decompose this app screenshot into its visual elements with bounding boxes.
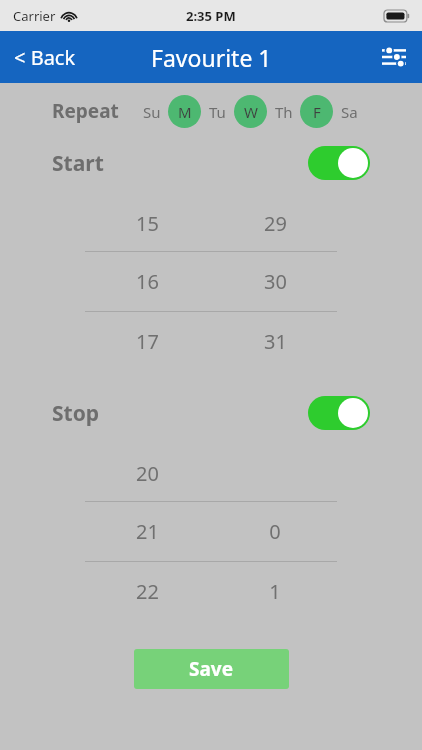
staticText: Sa xyxy=(341,102,358,122)
staticText: 2:35 PM xyxy=(186,7,236,25)
button[interactable]: Toggle xyxy=(308,396,370,430)
button[interactable]: 15 xyxy=(0,195,422,251)
staticText: Carrier xyxy=(13,7,56,25)
button[interactable]: 20 xyxy=(0,445,422,501)
button[interactable]: 16 xyxy=(0,251,422,311)
staticText: Th xyxy=(275,102,293,122)
button[interactable]: 17 xyxy=(0,311,422,371)
staticText: 29 xyxy=(264,210,287,237)
staticText: W xyxy=(244,102,258,122)
button[interactable]: Su xyxy=(135,95,168,128)
staticText: 20 xyxy=(136,460,159,487)
staticText: 15 xyxy=(136,210,159,237)
button[interactable]: < Back xyxy=(0,36,90,79)
staticText: F xyxy=(313,102,321,122)
staticText: Start xyxy=(52,149,104,178)
button[interactable]: Tu xyxy=(201,95,234,128)
button[interactable]: Toggle xyxy=(308,146,370,180)
button[interactable]: 21 xyxy=(0,501,422,561)
staticText: 0 xyxy=(269,518,281,545)
staticText: 30 xyxy=(264,268,287,295)
staticText: Save xyxy=(189,656,234,682)
staticText: Repeat xyxy=(52,98,119,124)
staticText: 31 xyxy=(264,328,287,355)
staticText: Tu xyxy=(209,102,226,122)
staticText: 16 xyxy=(136,268,159,295)
button[interactable]: Th xyxy=(267,95,300,128)
button[interactable]: M xyxy=(168,95,201,128)
button[interactable]: W xyxy=(234,95,267,128)
staticText: < Back xyxy=(14,44,76,71)
button[interactable]: Sa xyxy=(333,95,366,128)
button[interactable]: Save xyxy=(134,649,289,689)
button[interactable]: Settings xyxy=(374,38,414,76)
staticText: Favourite 1 xyxy=(151,42,272,73)
staticText: 22 xyxy=(136,578,159,605)
button[interactable]: F xyxy=(300,95,333,128)
staticText: 17 xyxy=(136,328,159,355)
staticText: 1 xyxy=(269,578,281,605)
staticText: 21 xyxy=(136,518,159,545)
staticText: Su xyxy=(143,102,161,122)
staticText: Stop xyxy=(52,399,100,428)
button[interactable]: 22 xyxy=(0,561,422,621)
staticText: M xyxy=(178,102,192,122)
